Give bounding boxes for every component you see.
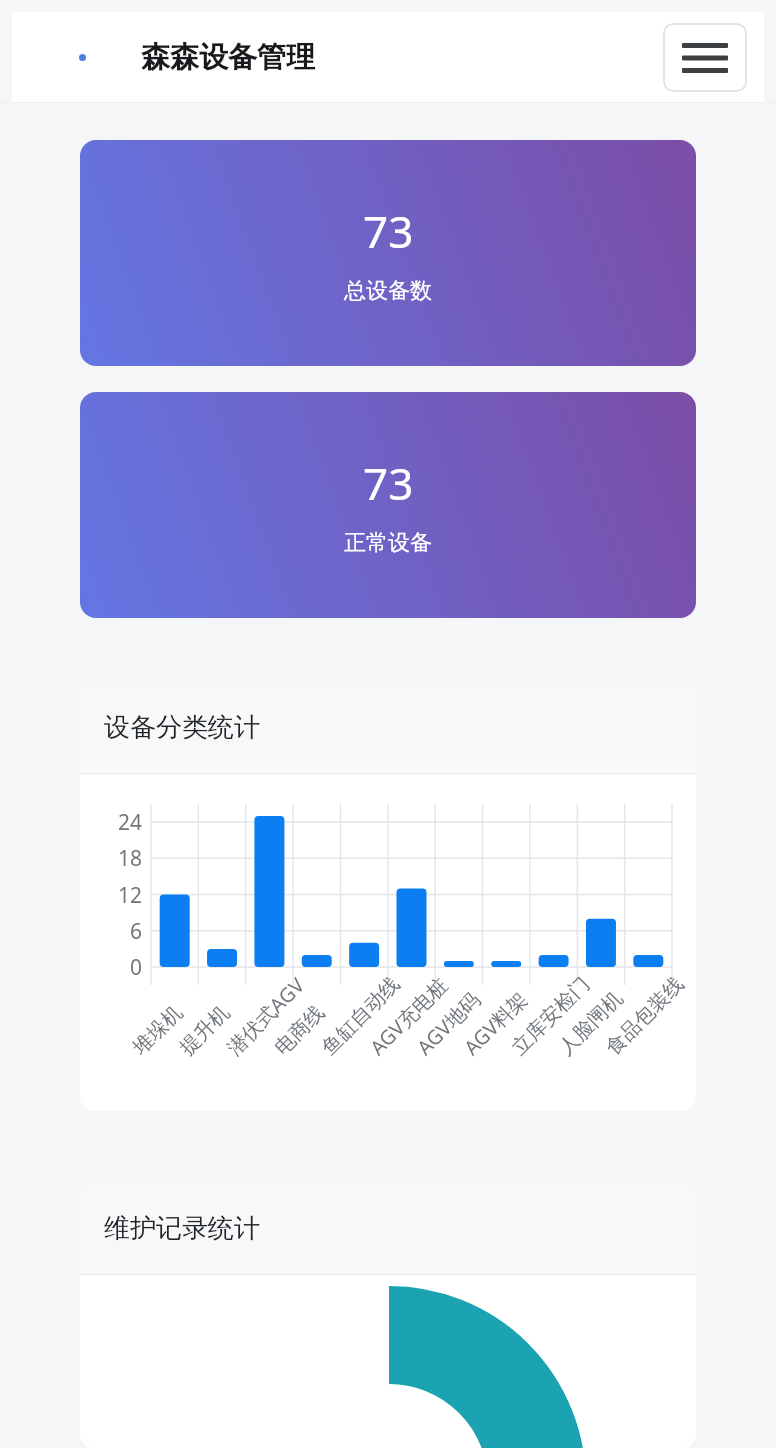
button[interactable]: 73 xyxy=(80,140,696,366)
staticText: 森森设备管理 xyxy=(141,39,315,76)
staticText: 立库安检门 xyxy=(507,972,595,1060)
staticText: 总设备数 xyxy=(344,277,432,305)
staticText: 潜伏式AGV xyxy=(221,972,310,1061)
staticText: 维护记录统计 xyxy=(104,1212,260,1245)
staticText: 堆垛机 xyxy=(128,1000,188,1060)
staticText: AGV充电桩 xyxy=(364,972,453,1061)
button[interactable]: Open navigation menu xyxy=(663,23,747,92)
staticText: 鱼缸自动线 xyxy=(317,972,405,1060)
staticText: 73 xyxy=(363,453,414,513)
staticText: 设备分类统计 xyxy=(104,711,260,744)
button[interactable]: 73 xyxy=(80,392,696,618)
staticText: AGV料架 xyxy=(458,986,533,1061)
staticText: 0 xyxy=(129,953,142,982)
staticText: 人脸闸机 xyxy=(554,986,628,1060)
staticText: 提升机 xyxy=(175,1000,235,1060)
staticText: 6 xyxy=(129,917,142,946)
staticText: 正常设备 xyxy=(344,529,432,557)
staticText: 24 xyxy=(117,808,142,837)
staticText: 电商线 xyxy=(270,1000,330,1060)
staticText: 12 xyxy=(117,881,142,910)
staticText: 73 xyxy=(363,201,414,261)
staticText: AGV地码 xyxy=(411,986,486,1061)
staticText: 18 xyxy=(117,844,142,873)
staticText: 食品包装线 xyxy=(601,972,689,1060)
